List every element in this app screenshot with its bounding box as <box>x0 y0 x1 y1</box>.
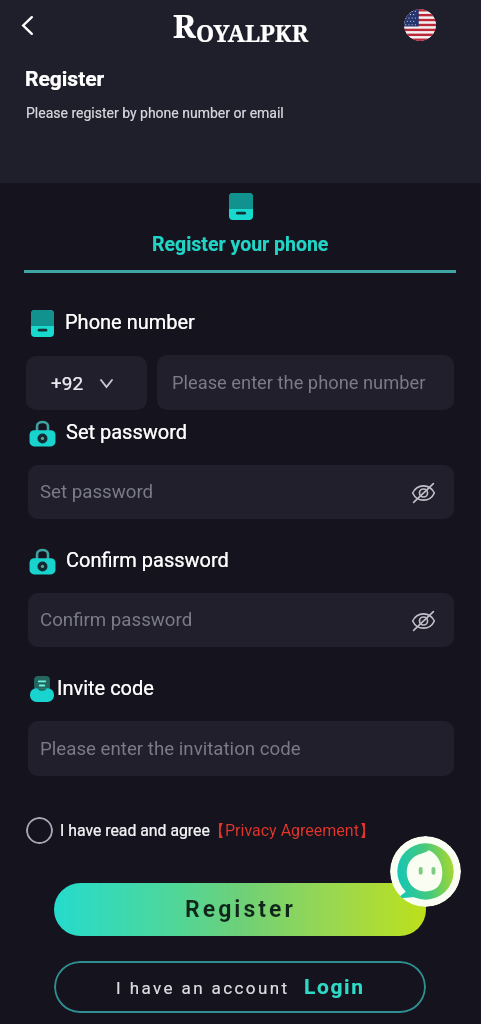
button[interactable]: Set password <box>28 465 454 519</box>
staticText: Register <box>185 896 296 923</box>
staticText: Invite code <box>57 676 154 699</box>
staticText: I have read and agree <box>60 821 210 840</box>
staticText: Phone number <box>65 310 195 333</box>
button[interactable]: Customer support chat <box>390 836 461 907</box>
button[interactable] <box>215 188 267 278</box>
staticText: Confirm password <box>66 548 229 571</box>
button[interactable]: Show password <box>407 476 440 509</box>
staticText: +92 <box>51 372 84 394</box>
staticText: Please enter the invitation code <box>40 738 301 760</box>
staticText: Register <box>25 67 105 92</box>
button[interactable]: Back <box>5 3 49 47</box>
staticText: Set password <box>66 420 188 443</box>
button[interactable]: Register <box>54 883 426 936</box>
button[interactable]: Please enter the invitation code <box>28 721 454 776</box>
button[interactable]: I have an account <box>54 961 426 1013</box>
staticText: OYALPKR <box>196 17 309 48</box>
staticText: R <box>173 4 196 48</box>
button[interactable]: I have read and agree <box>26 817 210 844</box>
staticText: Login <box>304 975 365 1000</box>
button[interactable]: Please enter the phone number <box>157 355 454 410</box>
staticText: Confirm password <box>40 609 193 631</box>
staticText: I have an account <box>116 978 290 998</box>
button[interactable]: Select language <box>404 9 436 41</box>
button[interactable]: +92 <box>26 356 147 410</box>
staticText: Register your phone <box>152 233 329 256</box>
button[interactable]: Show password <box>407 604 440 637</box>
staticText: Set password <box>40 481 154 503</box>
staticText: Please enter the phone number <box>172 372 426 393</box>
staticText: 【Privacy Agreement】 <box>209 821 375 841</box>
staticText: Please register by phone number or email <box>26 105 284 121</box>
button[interactable]: Confirm password <box>28 593 454 647</box>
button[interactable]: 【Privacy Agreement】 <box>209 818 375 844</box>
